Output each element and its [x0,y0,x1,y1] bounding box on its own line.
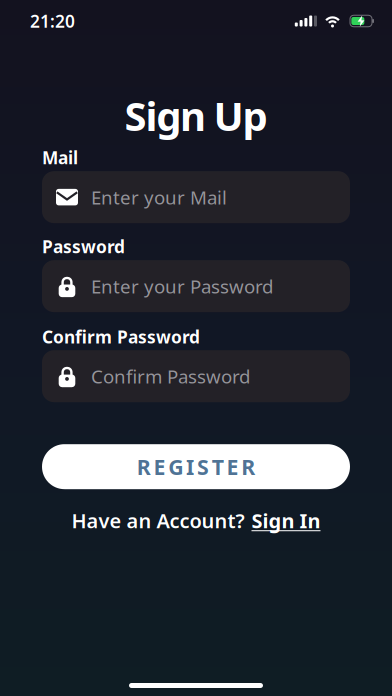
staticText: Sign In [251,507,320,534]
button[interactable]: Enter your Password [42,260,350,312]
button[interactable]: Sign In [251,507,320,534]
staticText: Sign Up [125,89,267,142]
staticText: Mail [42,146,78,169]
staticText: Password [42,235,125,258]
staticText: Have an Account? [71,507,244,534]
staticText: Confirm Password [42,325,200,348]
staticText: Enter your Password [91,274,273,299]
button[interactable]: Enter your Mail [42,171,350,223]
staticText: Confirm Password [91,364,250,389]
button[interactable]: Confirm Password [42,350,350,402]
staticText: Enter your Mail [91,185,227,209]
staticText: 21:20 [30,9,75,32]
button[interactable]: REGISTER [42,444,350,489]
staticText: REGISTER [137,452,255,481]
